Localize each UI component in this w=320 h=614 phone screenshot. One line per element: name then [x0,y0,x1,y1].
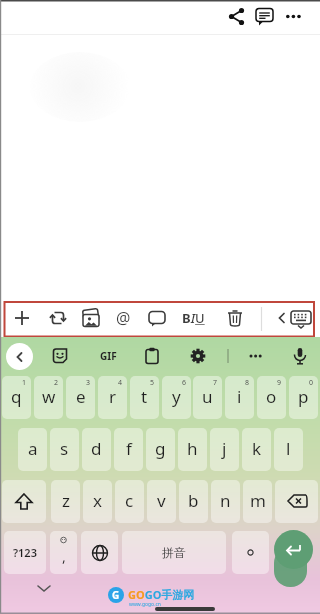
button[interactable] [50,345,72,367]
staticText: u [202,385,213,408]
button[interactable]: b [179,480,208,523]
staticText: x [93,489,102,512]
button[interactable]: q [2,376,31,419]
button[interactable] [289,307,313,331]
button[interactable] [6,343,33,370]
button[interactable]: f [114,428,143,471]
button[interactable] [275,480,318,523]
button[interactable]: i [225,376,254,419]
staticText: 8 [245,378,250,388]
staticText: 5 [150,378,155,388]
button[interactable] [225,5,248,28]
staticText: 4 [118,378,123,388]
button[interactable]: g [146,428,175,471]
staticText: e [76,385,86,408]
button[interactable] [79,307,101,329]
button[interactable]: m [243,480,272,523]
button[interactable] [2,480,46,523]
staticText: i [237,385,242,408]
button[interactable]: o [257,376,286,419]
button[interactable] [282,5,305,28]
staticText: w [42,385,56,408]
staticText: 2 [54,378,59,388]
staticText: f [126,437,132,460]
staticText: z [62,489,70,512]
staticText: @ [116,307,131,329]
button[interactable] [146,307,168,329]
staticText: 0 [309,378,314,388]
button[interactable]: y [162,376,191,419]
staticText: b [188,489,199,512]
button[interactable] [224,307,246,329]
staticText: GOGO手游网 [128,587,195,602]
button[interactable]: h [178,428,207,471]
staticText: , [62,547,66,566]
staticText: o [266,385,277,408]
button[interactable]: BIU [182,308,205,328]
button[interactable]: ?123 [4,531,46,574]
button[interactable] [47,307,69,329]
staticText: l [286,437,291,460]
button[interactable] [253,5,276,28]
staticText: G [112,588,120,602]
button[interactable]: GIF [95,345,121,367]
button[interactable] [187,345,209,367]
staticText: 拼音 [162,545,186,560]
button[interactable] [81,531,118,574]
button[interactable]: 拼音 [122,531,226,574]
button[interactable]: , [50,531,77,574]
button[interactable]: l [274,428,303,471]
staticText: ?123 [13,545,37,560]
staticText: BIU [182,309,205,327]
button[interactable]: w [34,376,63,419]
staticText: d [91,437,102,460]
staticText: 3 [86,378,91,388]
button[interactable]: d [82,428,111,471]
staticText: c [125,489,134,512]
staticText: www.gogo.cn [129,601,161,608]
staticText: y [172,385,181,408]
button[interactable]: s [50,428,79,471]
button[interactable]: t [130,376,159,419]
button[interactable] [289,345,311,367]
button[interactable]: n [211,480,240,523]
button[interactable]: c [115,480,144,523]
button[interactable]: z [51,480,80,523]
button[interactable]: u [193,376,222,419]
button[interactable] [11,307,33,329]
button[interactable] [232,531,269,574]
staticText: g [155,437,166,460]
staticText: 9 [277,378,282,388]
button[interactable]: v [147,480,176,523]
staticText: 7 [213,378,218,388]
button[interactable]: x [83,480,112,523]
staticText: k [252,437,262,460]
button[interactable]: p [289,376,318,419]
staticText: a [28,437,38,460]
button[interactable]: e [66,376,95,419]
staticText: 1 [22,378,27,388]
button[interactable]: j [210,428,239,471]
button[interactable] [141,345,163,367]
staticText: 6 [182,378,187,388]
button[interactable] [274,530,313,569]
button[interactable]: r [98,376,127,419]
button[interactable] [274,308,290,328]
staticText: t [141,385,148,408]
staticText: n [220,489,231,512]
staticText: j [222,437,227,460]
button[interactable]: @ [112,307,134,329]
staticText: r [109,385,117,408]
button[interactable]: a [18,428,47,471]
staticText: m [250,489,266,512]
button[interactable] [245,345,267,367]
staticText: s [60,437,69,460]
button[interactable]: k [242,428,271,471]
staticText: h [187,437,198,460]
staticText: p [298,385,309,408]
staticText: v [157,489,166,512]
staticText: q [11,385,22,408]
staticText: GIF [100,349,117,363]
